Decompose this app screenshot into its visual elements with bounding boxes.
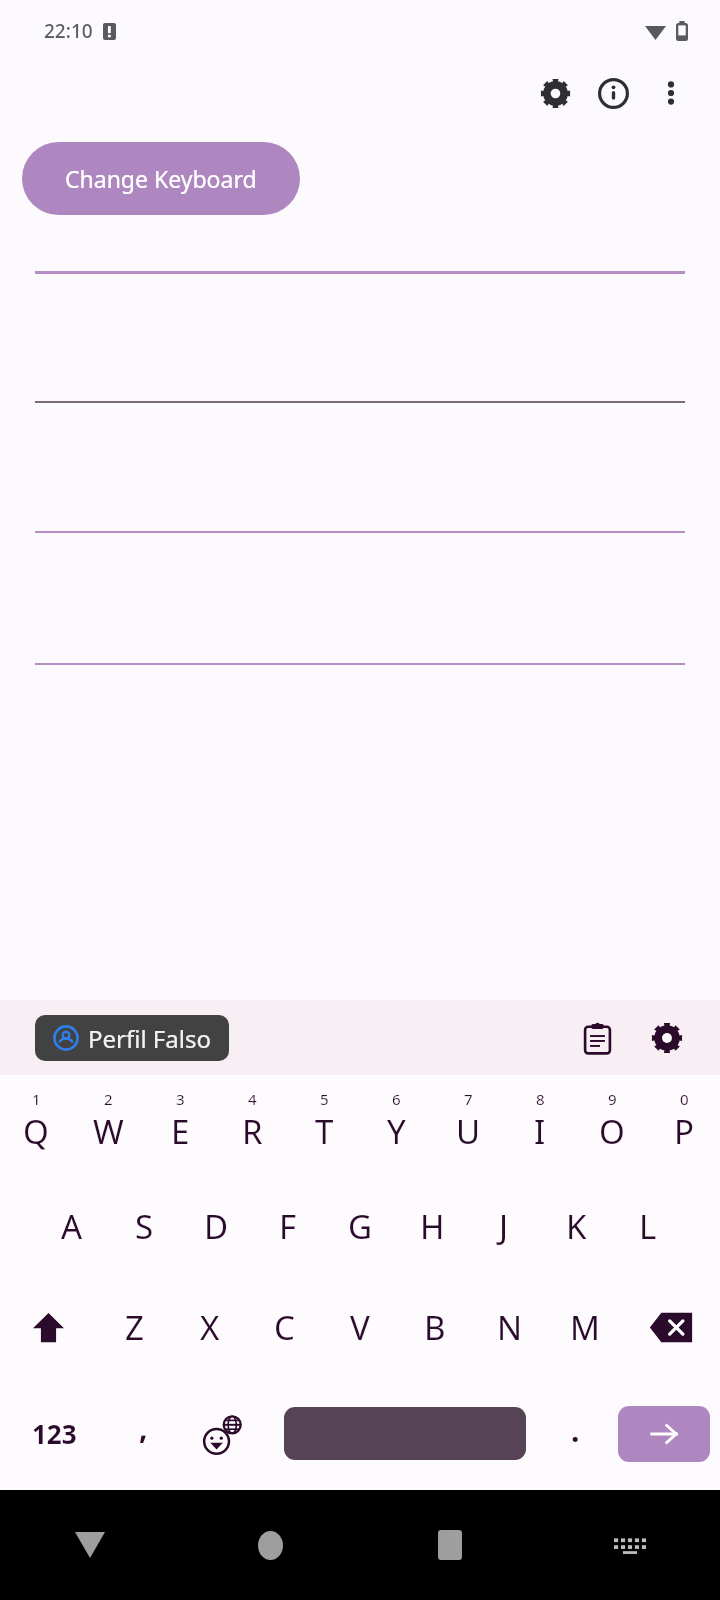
- staticText: Z: [125, 1305, 144, 1350]
- button[interactable]: K: [540, 1175, 612, 1277]
- staticText: 9: [608, 1089, 617, 1109]
- staticText: J: [499, 1204, 509, 1249]
- button[interactable]: X: [172, 1277, 247, 1377]
- button[interactable]: V: [322, 1277, 397, 1377]
- button[interactable]: Shift: [0, 1277, 97, 1377]
- button[interactable]: More options: [642, 64, 700, 122]
- button[interactable]: Keyboard settings: [636, 1007, 698, 1069]
- button[interactable]: 7: [432, 1075, 504, 1175]
- staticText: .: [571, 1410, 580, 1451]
- button[interactable]: Enter: [618, 1406, 710, 1462]
- button[interactable]: Back: [0, 1490, 180, 1600]
- staticText: R: [242, 1109, 263, 1154]
- staticText: T: [315, 1109, 334, 1154]
- button[interactable]: Recents: [360, 1490, 540, 1600]
- button[interactable]: Home: [180, 1490, 360, 1600]
- staticText: 0: [680, 1089, 689, 1109]
- staticText: 2: [104, 1089, 113, 1109]
- button[interactable]: 6: [360, 1075, 432, 1175]
- button[interactable]: Change Keyboard: [22, 142, 300, 215]
- staticText: A: [61, 1204, 83, 1249]
- staticText: N: [497, 1305, 523, 1350]
- staticText: M: [570, 1305, 600, 1350]
- button[interactable]: A: [36, 1175, 108, 1277]
- staticText: G: [348, 1204, 373, 1249]
- button[interactable]: .: [542, 1377, 608, 1490]
- staticText: I: [534, 1109, 546, 1154]
- button[interactable]: N: [472, 1277, 547, 1377]
- staticText: X: [200, 1305, 220, 1350]
- button[interactable]: D: [180, 1175, 252, 1277]
- button[interactable]: Settings: [526, 64, 584, 122]
- staticText: 7: [464, 1089, 473, 1109]
- staticText: K: [566, 1204, 587, 1249]
- staticText: F: [279, 1204, 297, 1249]
- staticText: 8: [536, 1089, 545, 1109]
- staticText: 1: [32, 1089, 41, 1109]
- button[interactable]: H: [396, 1175, 468, 1277]
- button[interactable]: Backspace: [622, 1277, 720, 1377]
- staticText: P: [674, 1109, 694, 1154]
- button[interactable]: G: [324, 1175, 396, 1277]
- staticText: 123: [32, 1416, 77, 1451]
- button[interactable]: Info: [584, 64, 642, 122]
- button[interactable]: Switch keyboard: [540, 1490, 720, 1600]
- button[interactable]: Emoji and language: [178, 1377, 268, 1490]
- button[interactable]: 4: [216, 1075, 288, 1175]
- staticText: O: [599, 1109, 625, 1154]
- button[interactable]: 2: [72, 1075, 144, 1175]
- button[interactable]: J: [468, 1175, 540, 1277]
- button[interactable]: S: [108, 1175, 180, 1277]
- staticText: Y: [387, 1109, 406, 1154]
- button[interactable]: 3: [144, 1075, 216, 1175]
- button[interactable]: 1: [0, 1075, 72, 1175]
- staticText: S: [135, 1204, 154, 1249]
- staticText: B: [424, 1305, 446, 1350]
- button[interactable]: M: [547, 1277, 622, 1377]
- button[interactable]: 0: [648, 1075, 720, 1175]
- staticText: U: [456, 1109, 481, 1154]
- staticText: 5: [320, 1089, 329, 1109]
- staticText: L: [639, 1204, 657, 1249]
- button[interactable]: Z: [97, 1277, 172, 1377]
- button[interactable]: F: [252, 1175, 324, 1277]
- button[interactable]: L: [612, 1175, 684, 1277]
- button[interactable]: Perfil Falso: [35, 1015, 229, 1061]
- button[interactable]: C: [247, 1277, 322, 1377]
- staticText: C: [274, 1305, 295, 1350]
- staticText: E: [171, 1109, 190, 1154]
- staticText: V: [350, 1305, 370, 1350]
- staticText: Change Keyboard: [65, 163, 257, 194]
- button[interactable]: Space: [284, 1407, 526, 1460]
- staticText: Perfil Falso: [88, 1022, 211, 1055]
- button[interactable]: Clipboard: [566, 1007, 628, 1069]
- staticText: W: [93, 1109, 124, 1154]
- staticText: 22:10: [44, 18, 93, 44]
- staticText: 6: [392, 1089, 401, 1109]
- button[interactable]: ,: [108, 1377, 178, 1490]
- button[interactable]: 8: [504, 1075, 576, 1175]
- button[interactable]: 9: [576, 1075, 648, 1175]
- staticText: 4: [248, 1089, 257, 1109]
- button[interactable]: 5: [288, 1075, 360, 1175]
- staticText: D: [204, 1204, 229, 1249]
- button[interactable]: 123: [0, 1377, 108, 1490]
- staticText: H: [420, 1204, 445, 1249]
- staticText: Q: [23, 1109, 49, 1154]
- staticText: 3: [176, 1089, 185, 1109]
- button[interactable]: B: [397, 1277, 472, 1377]
- staticText: ,: [139, 1407, 148, 1448]
